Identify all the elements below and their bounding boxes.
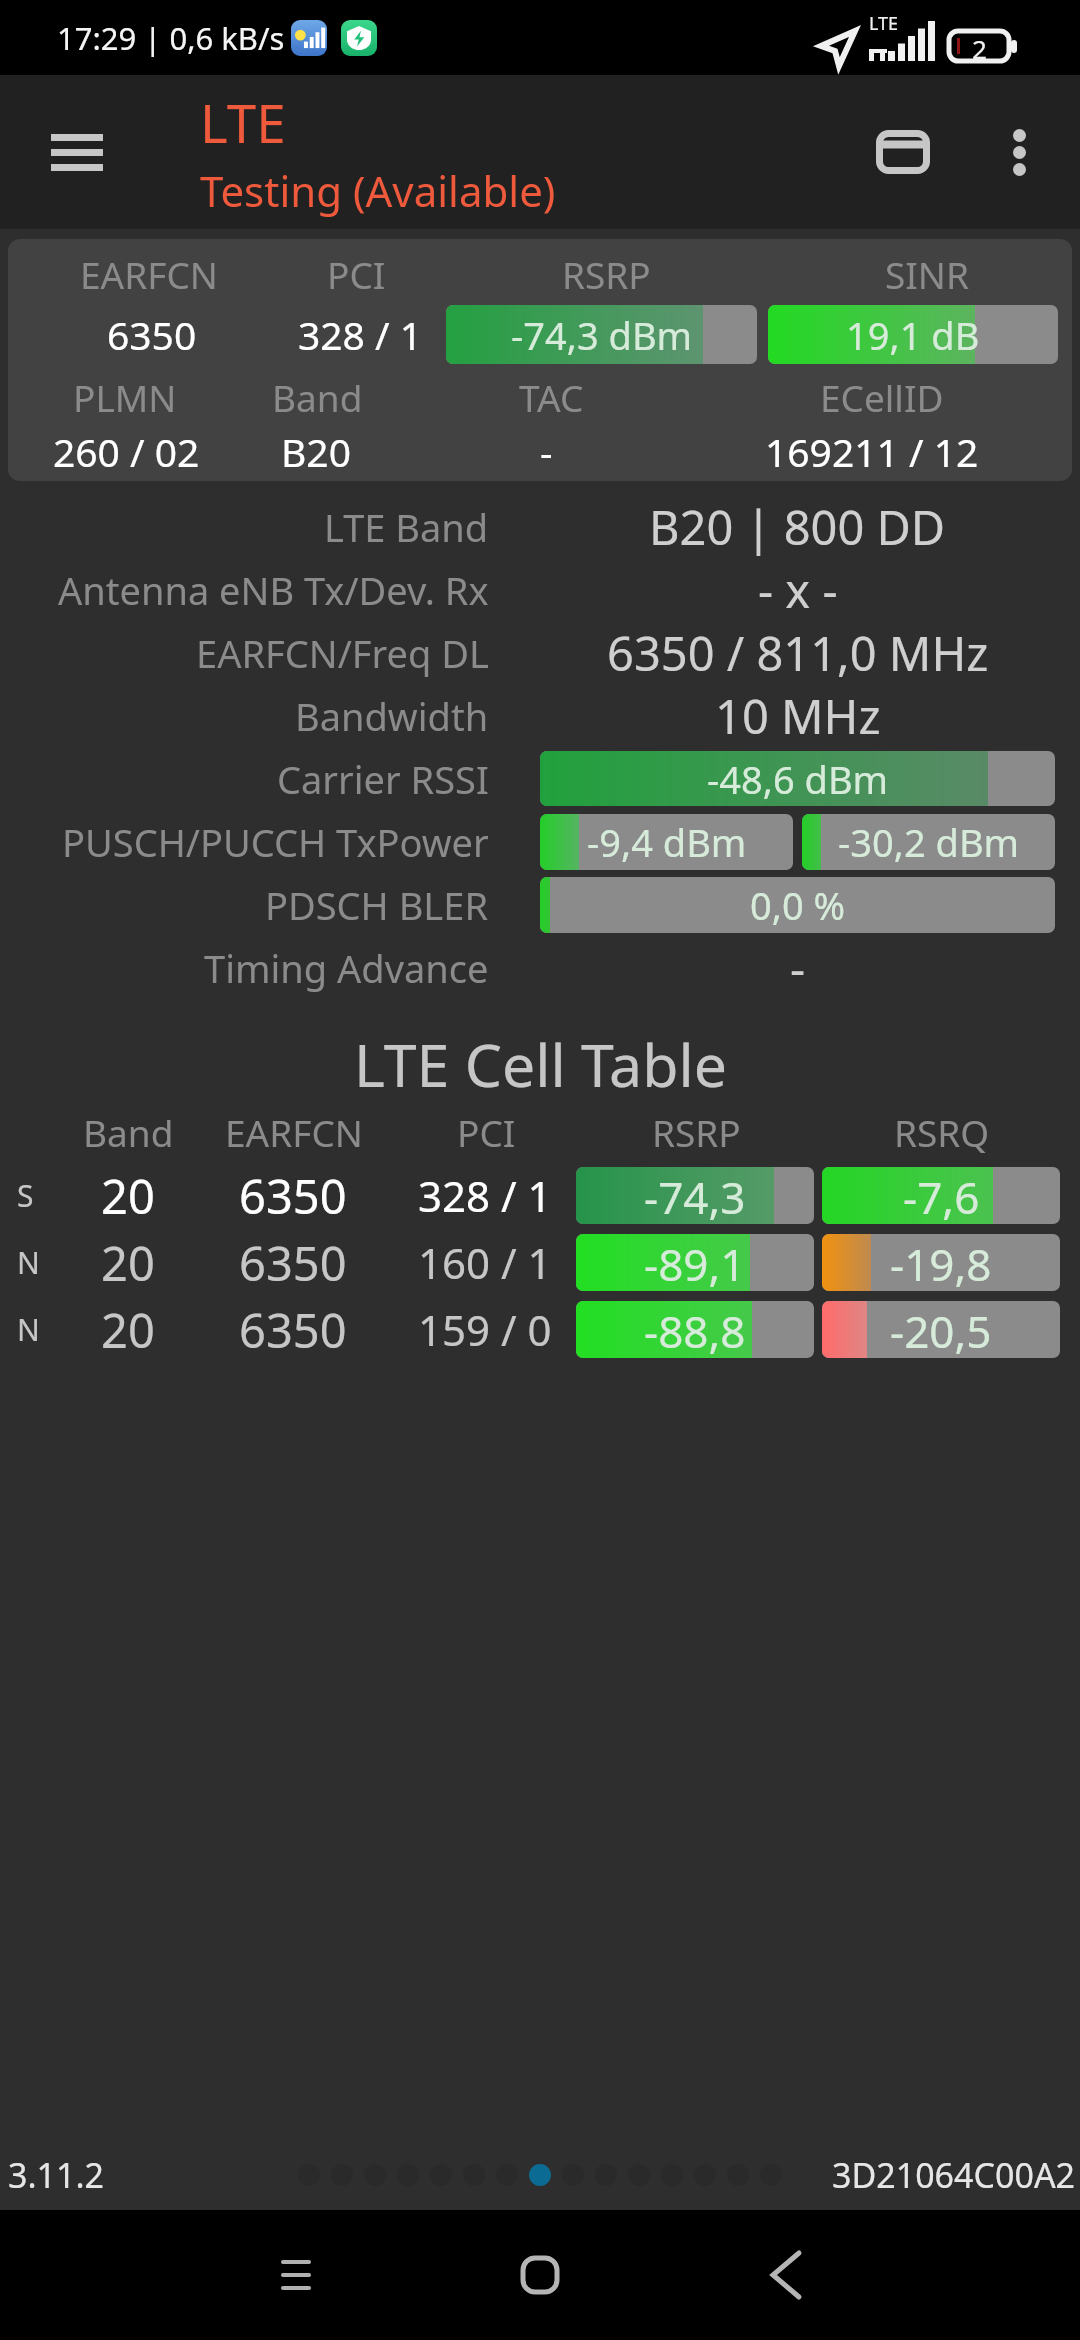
staticText: 20 (101, 1164, 155, 1228)
staticText: 2 (972, 31, 987, 61)
button[interactable]: Open navigation drawer (17, 92, 137, 212)
staticText: -89,1 (644, 1234, 746, 1291)
staticText: -30,2 dBm (838, 816, 1020, 868)
staticText: Carrier RSSI (277, 753, 489, 805)
staticText: PUSCH/PUCCH TxPower (62, 816, 489, 868)
staticText: 19,1 dB (846, 309, 980, 361)
staticText: 20 (101, 1298, 155, 1362)
staticText: 328 / 1 (298, 308, 423, 361)
staticText: N (17, 1242, 40, 1283)
staticText: 159 / 0 (418, 1301, 552, 1358)
staticText: N (17, 1309, 40, 1350)
staticText: 6350 (239, 1231, 347, 1295)
staticText: Bandwidth (295, 690, 489, 742)
staticText: -19,8 (890, 1234, 992, 1291)
staticText: TAC (519, 372, 584, 422)
staticText: 6350 (107, 308, 197, 361)
button[interactable]: Recent apps (226, 2210, 366, 2340)
staticText: 20 (101, 1231, 155, 1295)
staticText: 260 / 02 (53, 425, 200, 478)
staticText: - x - (758, 558, 838, 621)
staticText: -74,3 (644, 1167, 746, 1224)
staticText: Band (83, 1107, 174, 1157)
button[interactable]: More options (967, 100, 1071, 204)
staticText: S (17, 1175, 34, 1216)
button[interactable]: Change layout (848, 97, 958, 207)
staticText: 328 / 1 (418, 1167, 552, 1224)
staticText: 3D21064C00A2 (832, 2152, 1076, 2198)
staticText: LTE (200, 86, 286, 158)
button[interactable]: Home (470, 2210, 610, 2340)
button[interactable]: N (0, 1229, 1080, 1296)
staticText: -88,8 (644, 1301, 746, 1358)
staticText: 10 MHz (715, 684, 881, 747)
staticText: 160 / 1 (418, 1234, 552, 1291)
staticText: Testing (Available) (200, 162, 556, 219)
staticText: -9,4 dBm (587, 816, 747, 868)
staticText: EARFCN (80, 249, 218, 299)
button[interactable]: N (0, 1296, 1080, 1363)
staticText: -48,6 dBm (707, 753, 889, 805)
staticText: Timing Advance (204, 942, 489, 994)
staticText: RSRQ (894, 1107, 990, 1157)
staticText: - (540, 425, 553, 478)
button[interactable]: Back (716, 2210, 856, 2340)
staticText: Band (272, 372, 363, 422)
staticText: LTE Cell Table (354, 1024, 727, 1104)
staticText: RSRP (652, 1107, 741, 1157)
button[interactable]: S (0, 1162, 1080, 1229)
staticText: ECellID (820, 372, 944, 422)
staticText: B20 (281, 425, 351, 478)
staticText: PCI (457, 1107, 516, 1157)
staticText: 6350 (239, 1164, 347, 1228)
staticText: -7,6 (903, 1167, 980, 1224)
staticText: Antenna eNB Tx/Dev. Rx (58, 564, 489, 616)
staticText: -20,5 (890, 1301, 992, 1358)
staticText: PDSCH BLER (265, 879, 489, 931)
staticText: 17:29 | 0,6 kB/s (57, 17, 285, 59)
staticText: -74,3 dBm (511, 309, 693, 361)
staticText: 6350 (239, 1298, 347, 1362)
staticText: LTE (869, 11, 899, 36)
staticText: PCI (327, 249, 386, 299)
staticText: LTE Band (324, 501, 489, 553)
staticText: 0,0 % (750, 879, 846, 931)
staticText: PLMN (73, 372, 177, 422)
staticText: 6350 / 811,0 MHz (607, 621, 989, 684)
staticText: SINR (885, 249, 969, 299)
staticText: RSRP (562, 249, 651, 299)
staticText: 3.11.2 (8, 2152, 105, 2198)
staticText: 169211 / 12 (765, 425, 979, 478)
staticText: EARFCN (225, 1107, 363, 1157)
staticText: EARFCN/Freq DL (196, 627, 489, 679)
staticText: B20 | 800 DD (649, 495, 946, 558)
staticText: - (790, 936, 806, 999)
